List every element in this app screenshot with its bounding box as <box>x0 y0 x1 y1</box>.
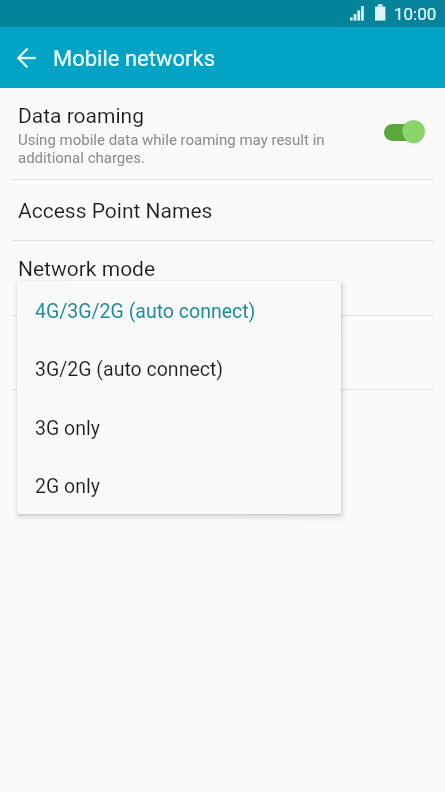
staticText: 3G/2G (auto connect) <box>35 358 224 381</box>
staticText: Using mobile data while roaming may resu… <box>18 131 325 167</box>
staticText: 2G only <box>35 475 100 498</box>
staticText: 3G only <box>35 417 100 440</box>
button[interactable]: Data roaming, on <box>380 117 428 149</box>
staticText: Access Point Names <box>18 199 213 224</box>
staticText: 10:00 <box>394 4 437 24</box>
button[interactable] <box>0 316 445 389</box>
button[interactable]: 2G only <box>17 456 341 514</box>
staticText: Data roaming <box>18 104 144 129</box>
staticText: Mobile networks <box>53 46 215 72</box>
button[interactable]: Network mode <box>0 241 445 315</box>
staticText: 4G/3G/2G (auto connect) <box>35 300 256 323</box>
button[interactable]: Navigate up <box>5 37 47 79</box>
button[interactable]: 4G/3G/2G (auto connect) <box>17 281 341 339</box>
button[interactable]: Access Point Names <box>0 180 445 240</box>
button[interactable]: 3G only <box>17 398 341 456</box>
staticText: Network mode <box>18 257 156 282</box>
button[interactable]: Data roaming <box>0 88 445 179</box>
button[interactable]: 3G/2G (auto connect) <box>17 339 341 397</box>
